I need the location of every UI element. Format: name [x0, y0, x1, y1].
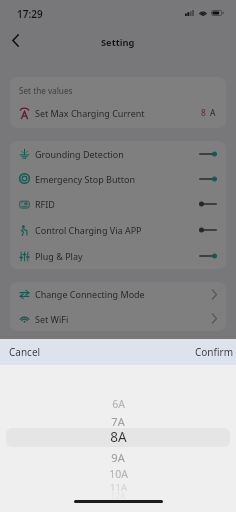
button[interactable]: Back — [0, 25, 30, 55]
button[interactable]: Control Charging Via APP — [10, 217, 226, 243]
button[interactable]: Confirm — [185, 340, 236, 364]
button[interactable]: Cancel — [0, 340, 51, 364]
staticText: Setting — [101, 36, 135, 49]
staticText: RFID — [35, 198, 55, 210]
button[interactable]: RFID — [10, 191, 226, 217]
staticText: Confirm — [195, 345, 234, 359]
button[interactable]: Change Connecting Mode — [10, 282, 226, 306]
button[interactable]: Grounding Detection — [10, 141, 226, 166]
staticText: 6A — [112, 397, 125, 411]
button[interactable]: Set Max Charging Current — [10, 102, 226, 124]
staticText: 17:29 — [17, 7, 43, 21]
staticText: Change Connecting Mode — [35, 288, 145, 300]
button[interactable]: Set WiFi — [10, 306, 226, 331]
staticText: Emergency Stop Button — [35, 173, 135, 185]
staticText: 11A — [110, 481, 127, 494]
button[interactable]: Plug & Play — [10, 243, 226, 269]
button[interactable]: Emergency Stop Button — [10, 166, 226, 191]
staticText: Grounding Detection — [35, 148, 124, 160]
staticText: 10A — [109, 467, 128, 481]
staticText: Control Charging Via APP — [35, 224, 142, 236]
staticText: 12A — [110, 490, 126, 502]
staticText: 8A — [110, 428, 127, 446]
staticText: 8 — [201, 107, 206, 119]
staticText: Set Max Charging Current — [35, 107, 145, 119]
staticText: Set WiFi — [35, 313, 69, 325]
staticText: 9A — [111, 450, 125, 465]
staticText: 7A — [111, 414, 125, 429]
staticText: Set the values — [19, 85, 73, 96]
staticText: A — [210, 107, 216, 119]
staticText: Plug & Play — [35, 250, 83, 262]
staticText: Cancel — [9, 345, 41, 359]
